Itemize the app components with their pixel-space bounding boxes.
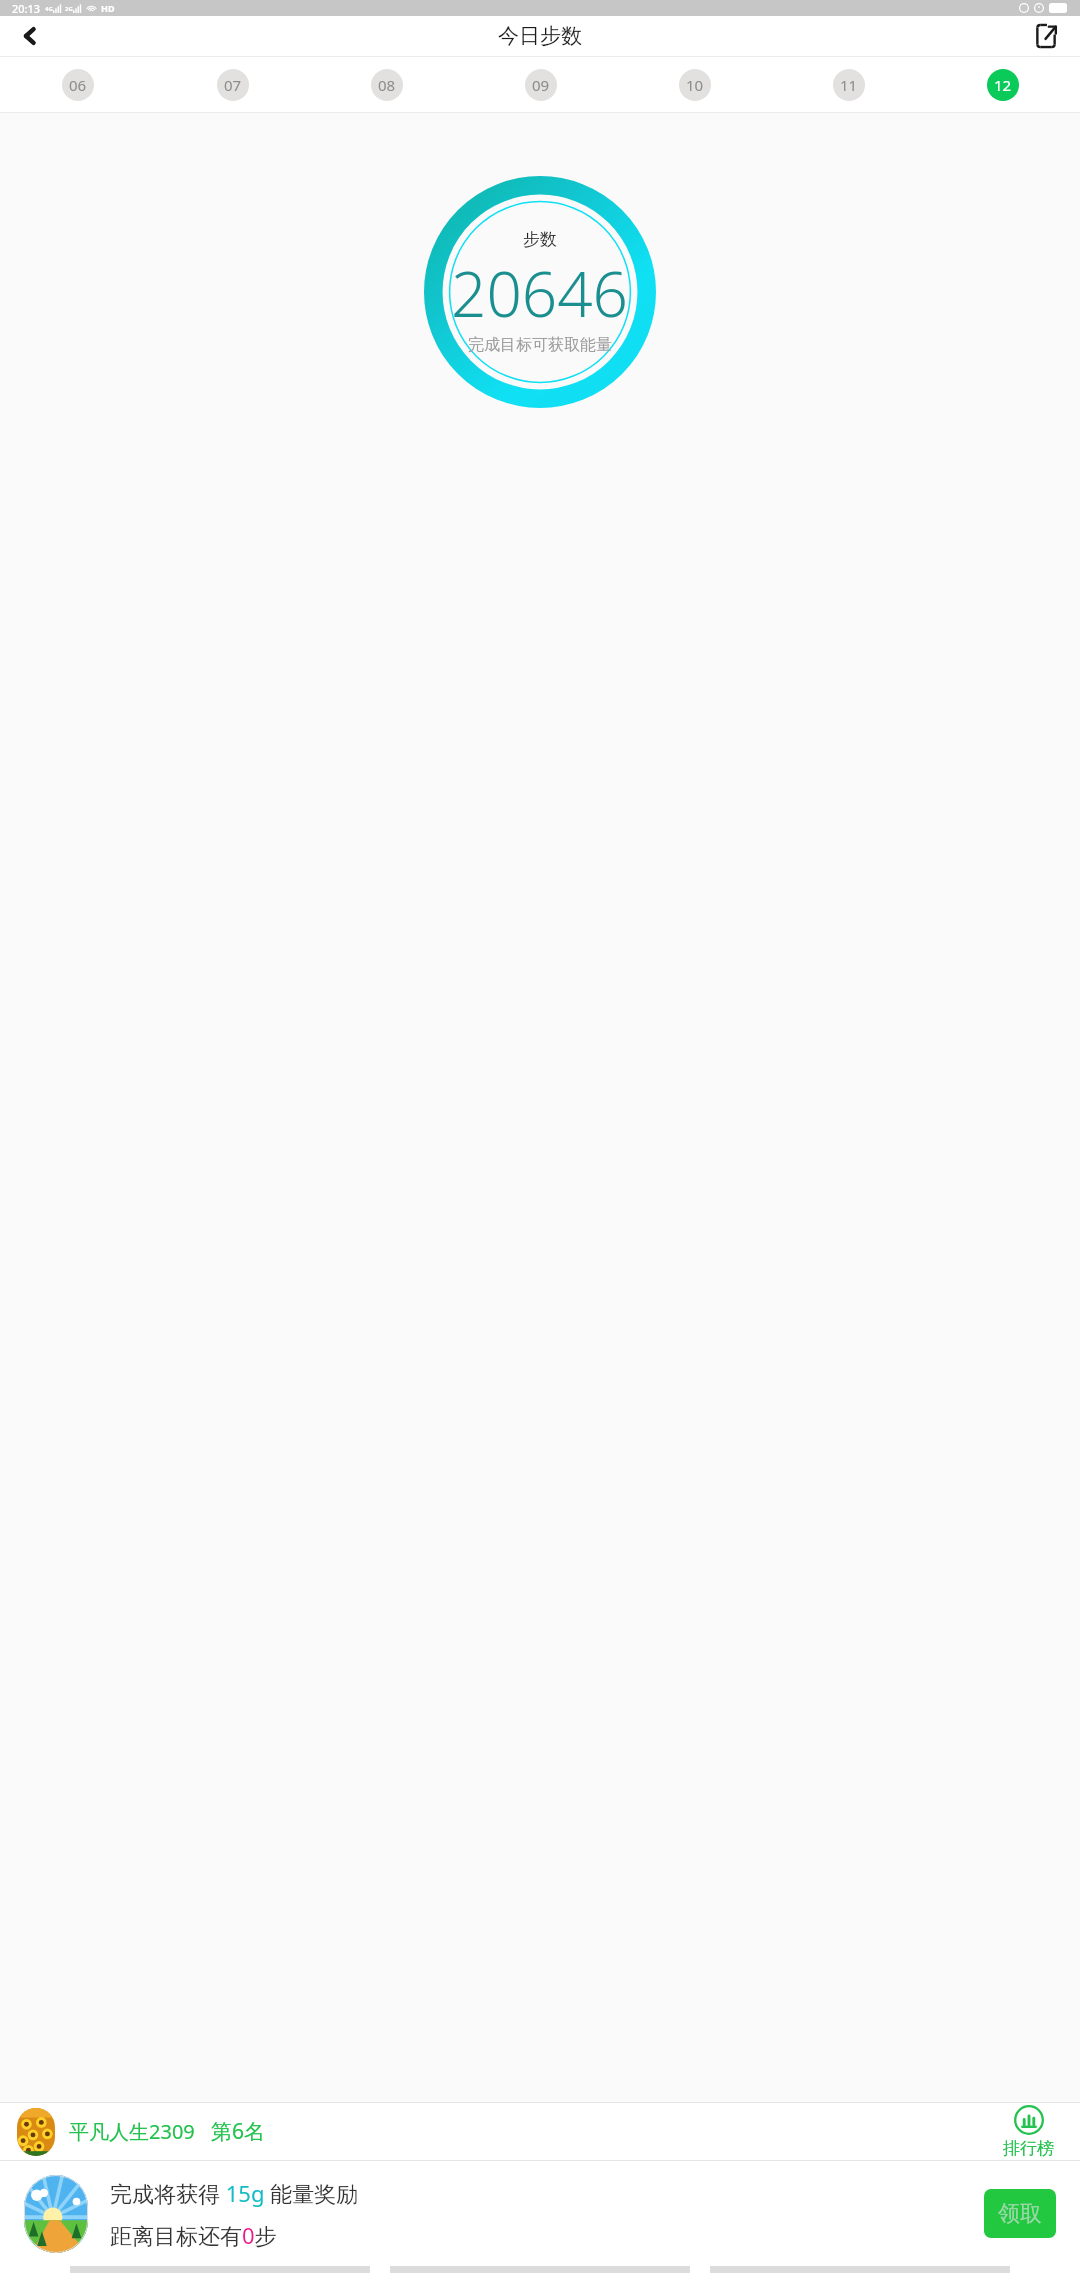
button[interactable]: 08: [371, 69, 403, 101]
button[interactable]: 领取: [984, 2189, 1056, 2238]
staticText: 今日步数: [498, 23, 582, 49]
button[interactable]: Share: [1024, 16, 1068, 56]
staticText: 20:13: [12, 1, 41, 16]
button[interactable]: 07: [217, 69, 249, 101]
staticText: 09: [532, 75, 550, 95]
staticText: 排行榜: [1003, 2138, 1054, 2159]
staticText: 4G: [45, 5, 53, 13]
staticText: 07: [224, 75, 242, 95]
staticText: 距离目标还有0步: [110, 2220, 277, 2250]
staticText: 12: [994, 75, 1012, 95]
staticText: 平凡人生2309: [69, 2118, 195, 2145]
staticText: 11: [840, 75, 858, 95]
button[interactable]: 06: [62, 69, 94, 101]
button[interactable]: 平凡人生2309: [0, 2103, 1080, 2160]
staticText: 08: [378, 75, 396, 95]
staticText: 完成将获得 15g 能量奖励: [110, 2178, 359, 2208]
button[interactable]: Back: [8, 16, 52, 56]
button[interactable]: 11: [833, 69, 865, 101]
staticText: 06: [69, 75, 87, 95]
button[interactable]: 10: [679, 69, 711, 101]
staticText: 20646: [451, 251, 629, 335]
staticText: 完成目标可获取能量: [468, 335, 612, 355]
button[interactable]: 排行榜: [1003, 2105, 1054, 2159]
button[interactable]: 12: [987, 69, 1019, 101]
staticText: 领取: [998, 2200, 1042, 2228]
staticText: 10: [686, 75, 704, 95]
staticText: HD: [101, 2, 115, 14]
staticText: 第6名: [211, 2117, 266, 2146]
button[interactable]: 09: [525, 69, 557, 101]
staticText: 2G: [65, 5, 73, 13]
staticText: 步数: [523, 229, 557, 250]
